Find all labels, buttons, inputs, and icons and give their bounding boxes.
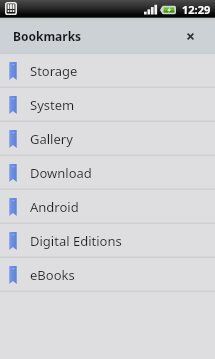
button[interactable]: Close bbox=[172, 18, 208, 54]
button[interactable]: Digital Editions bbox=[0, 224, 215, 258]
staticText: 12:29 bbox=[182, 2, 211, 17]
staticText: Storage bbox=[30, 62, 78, 80]
staticText: eBooks bbox=[30, 266, 75, 284]
button[interactable]: eBooks bbox=[0, 258, 215, 292]
button[interactable]: System bbox=[0, 88, 215, 122]
button[interactable]: Storage bbox=[0, 54, 215, 88]
button[interactable]: Download bbox=[0, 156, 215, 190]
staticText: Bookmarks bbox=[13, 28, 82, 44]
staticText: Download bbox=[30, 164, 92, 182]
staticText: Android bbox=[30, 198, 79, 216]
staticText: System bbox=[30, 96, 75, 114]
button[interactable]: Gallery bbox=[0, 122, 215, 156]
staticText: Digital Editions bbox=[30, 232, 122, 250]
staticText: Gallery bbox=[30, 130, 73, 148]
button[interactable]: Android bbox=[0, 190, 215, 224]
